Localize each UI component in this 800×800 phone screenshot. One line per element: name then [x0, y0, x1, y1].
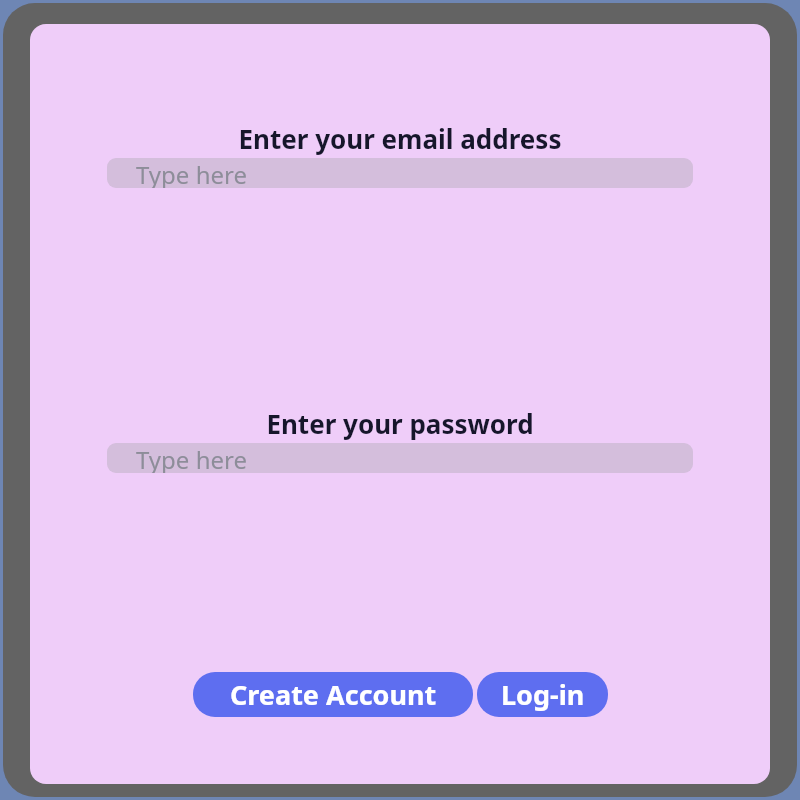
staticText: Create Account — [230, 676, 437, 713]
staticText: Enter your email address — [30, 121, 770, 156]
button[interactable]: Create Account — [193, 672, 473, 717]
staticText: Type here — [136, 443, 247, 473]
button[interactable]: Type here — [107, 158, 693, 188]
staticText: Type here — [136, 158, 247, 188]
staticText: Enter your password — [30, 406, 770, 441]
button[interactable]: Log-in — [477, 672, 608, 717]
staticText: Log-in — [501, 676, 585, 713]
button[interactable]: Type here — [107, 443, 693, 473]
